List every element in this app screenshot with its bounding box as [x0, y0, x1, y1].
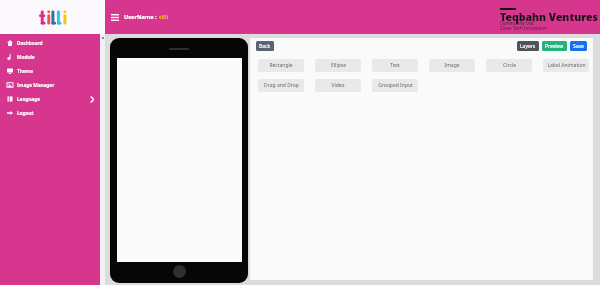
button[interactable]: Ellipse: [315, 59, 361, 72]
button[interactable]: Menu: [111, 14, 119, 21]
button[interactable]: Grouped Input: [372, 79, 418, 92]
staticText: Drag and Drop: [264, 82, 299, 89]
staticText: Text: [390, 62, 400, 69]
button[interactable]: Video: [315, 79, 361, 92]
button[interactable]: Module: [0, 50, 100, 64]
staticText: Preview: [545, 43, 564, 50]
staticText: Theme: [17, 68, 34, 75]
staticText: Clean Tech Innovation: [500, 25, 547, 31]
staticText: Dashboard: [17, 40, 43, 47]
staticText: Circle: [503, 62, 516, 69]
button[interactable]: Rectangle: [258, 59, 304, 72]
button[interactable]: Preview: [542, 41, 567, 51]
button[interactable]: Image: [429, 59, 475, 72]
staticText: Image: [444, 62, 460, 69]
staticText: Video: [331, 82, 345, 89]
staticText: Module: [17, 54, 35, 61]
staticText: Language: [17, 96, 41, 103]
button[interactable]: Layers: [517, 41, 539, 51]
staticText: Layers: [520, 43, 536, 50]
button[interactable]: Image Manager: [0, 78, 100, 92]
button[interactable]: Logout: [0, 106, 100, 120]
staticText: Logout: [17, 110, 34, 117]
staticText: Rectangle: [269, 62, 293, 69]
staticText: UserName :: [124, 13, 159, 21]
staticText: tilli: [159, 13, 169, 21]
button[interactable]: Language: [0, 92, 100, 106]
staticText: Teqbahn Ventures: [500, 10, 598, 24]
button[interactable]: Text: [372, 59, 418, 72]
staticText: Community Led: [500, 20, 534, 26]
button[interactable]: Circle: [486, 59, 532, 72]
staticText: Ellipse: [331, 62, 346, 69]
staticText: Back: [259, 43, 271, 50]
staticText: Grouped Input: [378, 82, 413, 89]
button[interactable]: Label Animation: [543, 59, 589, 72]
button[interactable]: Back: [256, 41, 274, 51]
staticText: Save: [573, 43, 584, 50]
button[interactable]: Dashboard: [0, 36, 100, 50]
button[interactable]: Drag and Drop: [258, 79, 304, 92]
button[interactable]: Theme: [0, 64, 100, 78]
button[interactable]: Save: [570, 41, 587, 51]
staticText: Image Manager: [17, 82, 55, 89]
staticText: Label Animation: [547, 62, 586, 69]
